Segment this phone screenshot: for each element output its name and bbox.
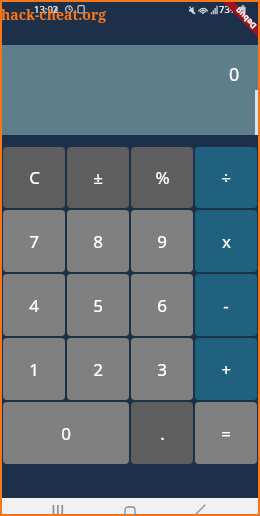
staticText: + xyxy=(221,358,231,381)
button[interactable]: 1 xyxy=(3,338,65,400)
button[interactable]: 3 xyxy=(131,338,193,400)
staticText: 0 xyxy=(229,62,240,87)
staticText: 8 xyxy=(93,230,103,253)
button[interactable]: C xyxy=(3,147,65,208)
staticText: % xyxy=(155,166,170,189)
staticText: ± xyxy=(93,166,103,189)
staticText: 9 xyxy=(157,230,167,253)
button[interactable]: 6 xyxy=(131,274,193,336)
button[interactable]: x xyxy=(195,210,257,272)
button[interactable]: ÷ xyxy=(195,147,257,208)
button[interactable]: % xyxy=(131,147,193,208)
staticText: Debug xyxy=(232,6,258,32)
staticText: 0 xyxy=(61,422,71,445)
button[interactable]: Back xyxy=(188,498,216,514)
staticText: 2 xyxy=(93,358,103,381)
button[interactable]: Home xyxy=(118,498,146,514)
button[interactable]: 8 xyxy=(67,210,129,272)
staticText: ÷ xyxy=(221,166,231,189)
button[interactable]: 4 xyxy=(3,274,65,336)
staticText: C xyxy=(29,166,40,189)
staticText: 3 xyxy=(157,358,167,381)
staticText: 7 xyxy=(29,230,39,253)
button[interactable]: 0 xyxy=(3,402,129,464)
button[interactable]: 7 xyxy=(3,210,65,272)
staticText: 73% xyxy=(219,3,238,16)
button[interactable]: 2 xyxy=(67,338,129,400)
button[interactable]: ± xyxy=(67,147,129,208)
staticText: x xyxy=(222,230,231,253)
button[interactable]: . xyxy=(131,402,193,464)
staticText: 6 xyxy=(157,294,167,317)
staticText: 13:02 xyxy=(34,3,59,16)
button[interactable]: + xyxy=(195,338,257,400)
staticText: . xyxy=(160,422,165,445)
staticText: = xyxy=(221,422,231,445)
button[interactable]: 5 xyxy=(67,274,129,336)
button[interactable]: 9 xyxy=(131,210,193,272)
staticText: 4 xyxy=(29,294,39,317)
staticText: 5 xyxy=(93,294,103,317)
staticText: hack-cheat.org xyxy=(1,5,107,24)
button[interactable]: Recents xyxy=(46,498,74,514)
button[interactable]: = xyxy=(195,402,257,464)
staticText: - xyxy=(223,294,229,317)
staticText: 1 xyxy=(29,358,39,381)
button[interactable]: - xyxy=(195,274,257,336)
